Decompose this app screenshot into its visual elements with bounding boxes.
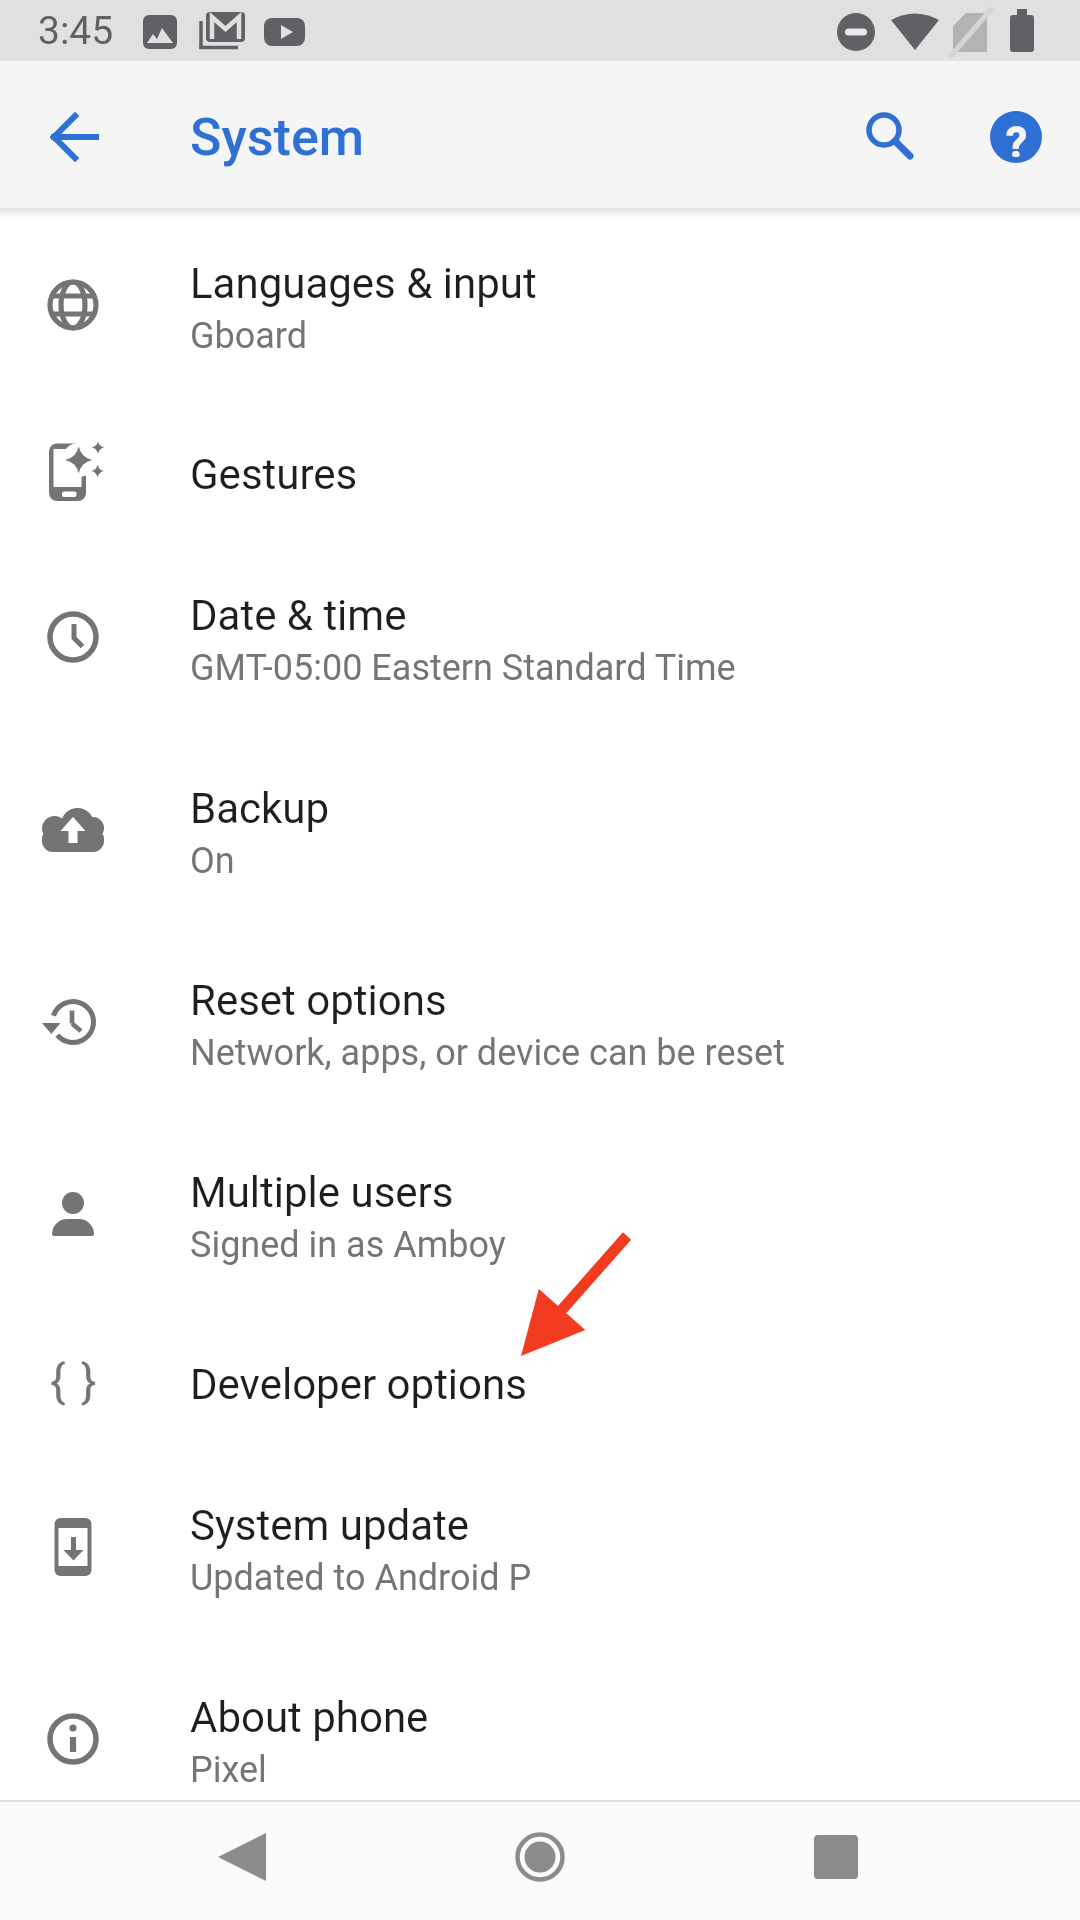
staticText: Languages & input xyxy=(190,259,537,308)
staticText: Date & time xyxy=(190,591,407,640)
button[interactable] xyxy=(0,1644,1080,1834)
staticText: } xyxy=(81,1354,97,1408)
button[interactable] xyxy=(788,1809,884,1905)
button[interactable] xyxy=(0,927,1080,1117)
staticText: GMT-05:00 Eastern Standard Time xyxy=(190,647,736,689)
button[interactable] xyxy=(0,1119,1080,1309)
staticText: System update xyxy=(190,1501,470,1550)
staticText: Gestures xyxy=(190,450,358,499)
button[interactable] xyxy=(0,1452,1080,1642)
staticText: Developer options xyxy=(190,1360,527,1409)
button[interactable] xyxy=(845,95,927,177)
staticText: On xyxy=(190,840,235,882)
staticText: Reset options xyxy=(190,976,447,1025)
staticText: System xyxy=(190,107,365,168)
staticText: Pixel xyxy=(190,1749,267,1791)
staticText: Network, apps, or device can be reset xyxy=(190,1032,785,1074)
button[interactable] xyxy=(0,210,1080,400)
staticText: Backup xyxy=(190,784,330,833)
button[interactable] xyxy=(976,98,1056,178)
staticText: Signed in as Amboy xyxy=(190,1224,506,1266)
staticText: ? xyxy=(1006,117,1027,157)
staticText: { xyxy=(50,1354,66,1408)
button[interactable] xyxy=(0,542,1080,732)
staticText: Multiple users xyxy=(190,1168,454,1217)
button[interactable] xyxy=(30,92,120,182)
staticText: Gboard xyxy=(190,315,308,357)
staticText: 3:45 xyxy=(38,8,114,54)
staticText: About phone xyxy=(190,1693,429,1742)
staticText: Updated to Android P xyxy=(190,1557,532,1599)
button[interactable] xyxy=(0,735,1080,925)
button[interactable] xyxy=(0,1299,1080,1465)
button[interactable] xyxy=(194,1809,290,1905)
button[interactable] xyxy=(492,1809,588,1905)
button[interactable] xyxy=(0,389,1080,555)
